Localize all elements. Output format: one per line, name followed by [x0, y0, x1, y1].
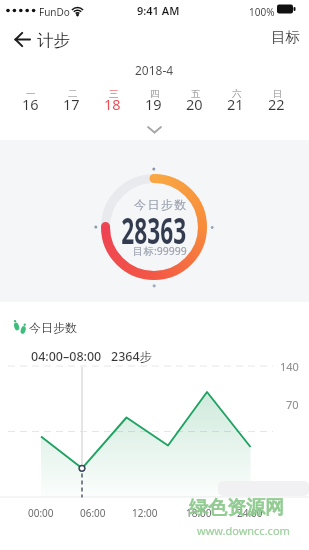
staticText: 00:00: [28, 506, 54, 520]
staticText: 19: [145, 94, 162, 114]
staticText: 目标: [271, 28, 300, 46]
button[interactable]: 目标: [265, 25, 309, 49]
staticText: 12:00: [132, 506, 158, 520]
staticText: 三: [109, 88, 119, 100]
staticText: 17: [63, 94, 80, 114]
staticText: 日: [273, 88, 283, 100]
staticText: 五: [191, 88, 201, 100]
button[interactable]: 17: [51, 93, 92, 114]
button[interactable]: [10, 28, 34, 50]
staticText: 目标:99999: [133, 244, 187, 258]
button[interactable]: [140, 120, 169, 138]
staticText: www.downcc.com: [197, 523, 290, 538]
staticText: 70: [286, 397, 299, 412]
button[interactable]: 19: [133, 93, 174, 114]
button[interactable]: 18: [92, 93, 133, 114]
staticText: 04:00–08:00 2364步: [31, 348, 153, 365]
staticText: 16: [22, 94, 39, 114]
staticText: 今日步数: [29, 320, 77, 335]
staticText: 22: [268, 94, 285, 114]
staticText: 140: [280, 359, 299, 374]
button[interactable]: 22: [256, 93, 297, 114]
staticText: 100%: [249, 5, 275, 19]
staticText: 一: [26, 88, 36, 100]
staticText: 20: [186, 94, 203, 114]
staticText: 18: [104, 94, 121, 114]
staticText: 9:41 AM: [137, 3, 180, 18]
staticText: 21: [227, 94, 244, 114]
staticText: 2018-4: [135, 62, 174, 78]
button[interactable]: 21: [215, 93, 256, 114]
button[interactable]: 16: [9, 93, 51, 114]
staticText: 28363: [121, 206, 187, 254]
staticText: 四: [150, 88, 160, 100]
staticText: 06:00: [80, 506, 106, 520]
staticText: 六: [232, 88, 242, 100]
staticText: 24:00: [237, 506, 263, 520]
staticText: FunDo: [39, 5, 70, 19]
button[interactable]: 20: [174, 93, 215, 114]
staticText: 绿色资源网: [189, 496, 284, 520]
staticText: 二: [68, 88, 78, 100]
staticText: 今日步数: [134, 197, 188, 212]
staticText: 18:00: [186, 506, 212, 520]
button[interactable]: 计步: [37, 30, 70, 51]
